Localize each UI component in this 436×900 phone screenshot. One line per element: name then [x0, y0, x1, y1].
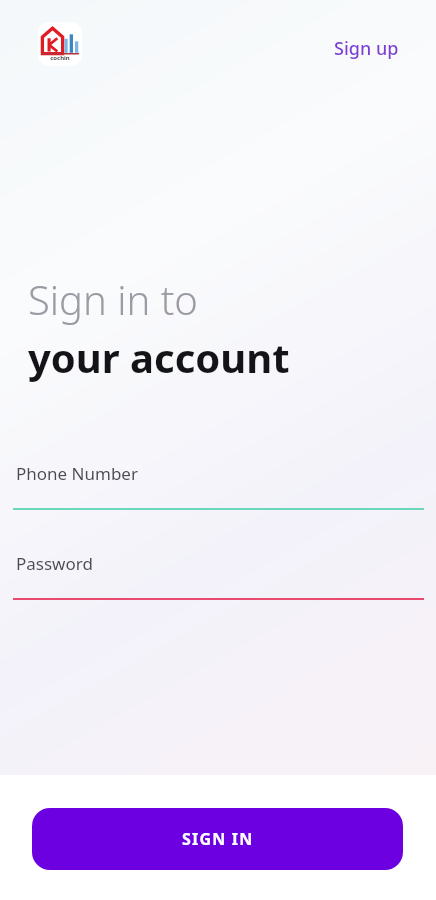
button[interactable]: SIGN IN: [32, 808, 403, 870]
staticText: cochin: [38, 54, 82, 62]
button[interactable]: Kochin logo: [38, 22, 82, 66]
staticText: Password: [16, 552, 93, 575]
staticText: SIGN IN: [182, 828, 254, 850]
button[interactable]: Password: [0, 552, 436, 600]
staticText: your account: [28, 330, 290, 384]
staticText: Phone Number: [16, 462, 138, 485]
staticText: Sign up: [334, 36, 399, 61]
button[interactable]: Phone Number: [0, 462, 436, 510]
staticText: Sign in to: [28, 272, 198, 326]
button[interactable]: Sign up: [320, 26, 413, 71]
